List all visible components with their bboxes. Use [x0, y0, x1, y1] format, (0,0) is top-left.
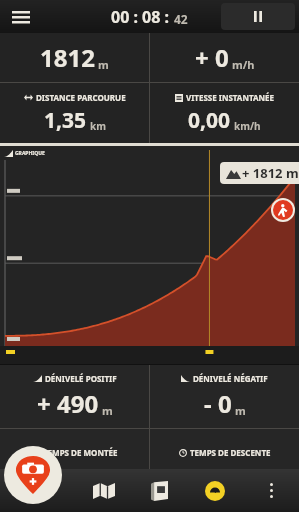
button[interactable]: VITESSE INSTANTANÉE — [150, 83, 299, 143]
staticText: TEMPS DE DESCENTE — [190, 447, 271, 458]
staticText: m/h — [232, 57, 255, 72]
button[interactable]: Ajouter une photo — [4, 446, 62, 504]
staticText: + 490 — [37, 387, 99, 420]
staticText: 1,35 — [44, 106, 87, 135]
button[interactable]: DÉNIVELÉ POSITIF — [0, 365, 149, 428]
button[interactable]: 1812 — [0, 33, 149, 82]
button[interactable]: DÉNIVELÉ NÉGATIF — [150, 365, 299, 428]
button[interactable]: Plus d'options — [243, 469, 299, 512]
staticText: km — [90, 119, 106, 133]
button[interactable]: TEMPS DE DESCENTE — [150, 429, 299, 512]
staticText: 07 — [59, 461, 87, 494]
staticText: + 1812 m — [242, 164, 299, 182]
staticText: m — [102, 403, 113, 418]
staticText: + 0 — [195, 41, 229, 74]
staticText: VITESSE INSTANTANÉE — [186, 92, 274, 103]
staticText: 00:00 — [192, 461, 254, 494]
staticText: km/h — [234, 119, 261, 133]
staticText: TEMPS DE MONTÉE — [43, 447, 118, 458]
button[interactable]: GRAPHIQUE — [0, 146, 299, 364]
staticText: 42 — [174, 11, 188, 27]
button[interactable]: Carte — [76, 469, 131, 512]
button[interactable]: Carnet — [131, 469, 187, 512]
staticText: m — [235, 403, 246, 418]
staticText: 00 : 08 : — [111, 6, 174, 28]
button[interactable]: TEMPS DE MONTÉE — [0, 429, 149, 512]
staticText: 1812 — [40, 41, 95, 74]
staticText: DISTANCE PARCOURUE — [36, 92, 126, 103]
button[interactable]: DISTANCE PARCOURUE — [0, 83, 149, 143]
staticText: - 0 — [204, 387, 232, 420]
staticText: GRAPHIQUE — [15, 150, 45, 157]
button[interactable]: Tableau de bord — [187, 469, 243, 512]
button[interactable]: Menu — [6, 2, 36, 32]
staticText: DÉNIVELÉ NÉGATIF — [193, 373, 268, 384]
staticText: DÉNIVELÉ POSITIF — [45, 373, 117, 384]
other: Position — [273, 200, 293, 220]
button[interactable]: + 0 — [150, 33, 299, 82]
staticText: m — [98, 57, 109, 72]
button[interactable]: Pause — [221, 3, 295, 30]
staticText: 0,00 — [188, 106, 231, 135]
